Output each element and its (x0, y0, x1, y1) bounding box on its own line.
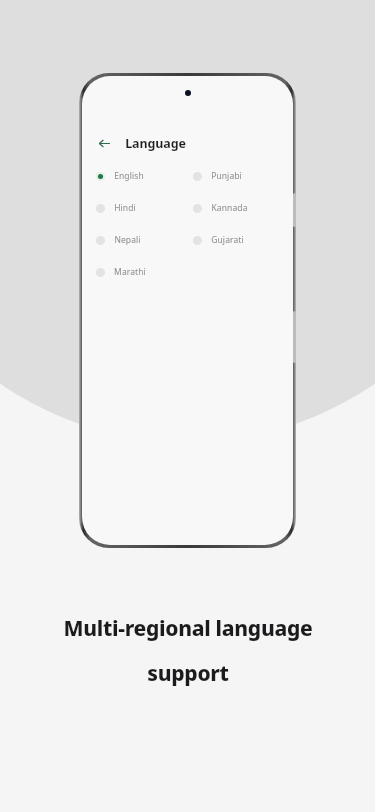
staticText: English (114, 170, 144, 182)
staticText: Hindi (114, 202, 136, 214)
staticText: Marathi (114, 266, 146, 278)
staticText: Kannada (211, 202, 248, 214)
staticText: Language (125, 135, 186, 152)
button[interactable]: Hindi (96, 199, 188, 217)
button[interactable]: English (96, 167, 188, 185)
button[interactable]: Back (91, 130, 117, 156)
button[interactable]: Punjabi (193, 167, 285, 185)
staticText: Multi-regional language (63, 614, 313, 643)
button[interactable]: Gujarati (193, 231, 285, 249)
staticText: support (147, 659, 229, 688)
button[interactable]: Kannada (193, 199, 285, 217)
staticText: Gujarati (211, 234, 244, 246)
button[interactable]: Nepali (96, 231, 188, 249)
staticText: Nepali (114, 234, 141, 246)
staticText: Punjabi (211, 170, 242, 182)
button[interactable]: Marathi (96, 263, 188, 281)
